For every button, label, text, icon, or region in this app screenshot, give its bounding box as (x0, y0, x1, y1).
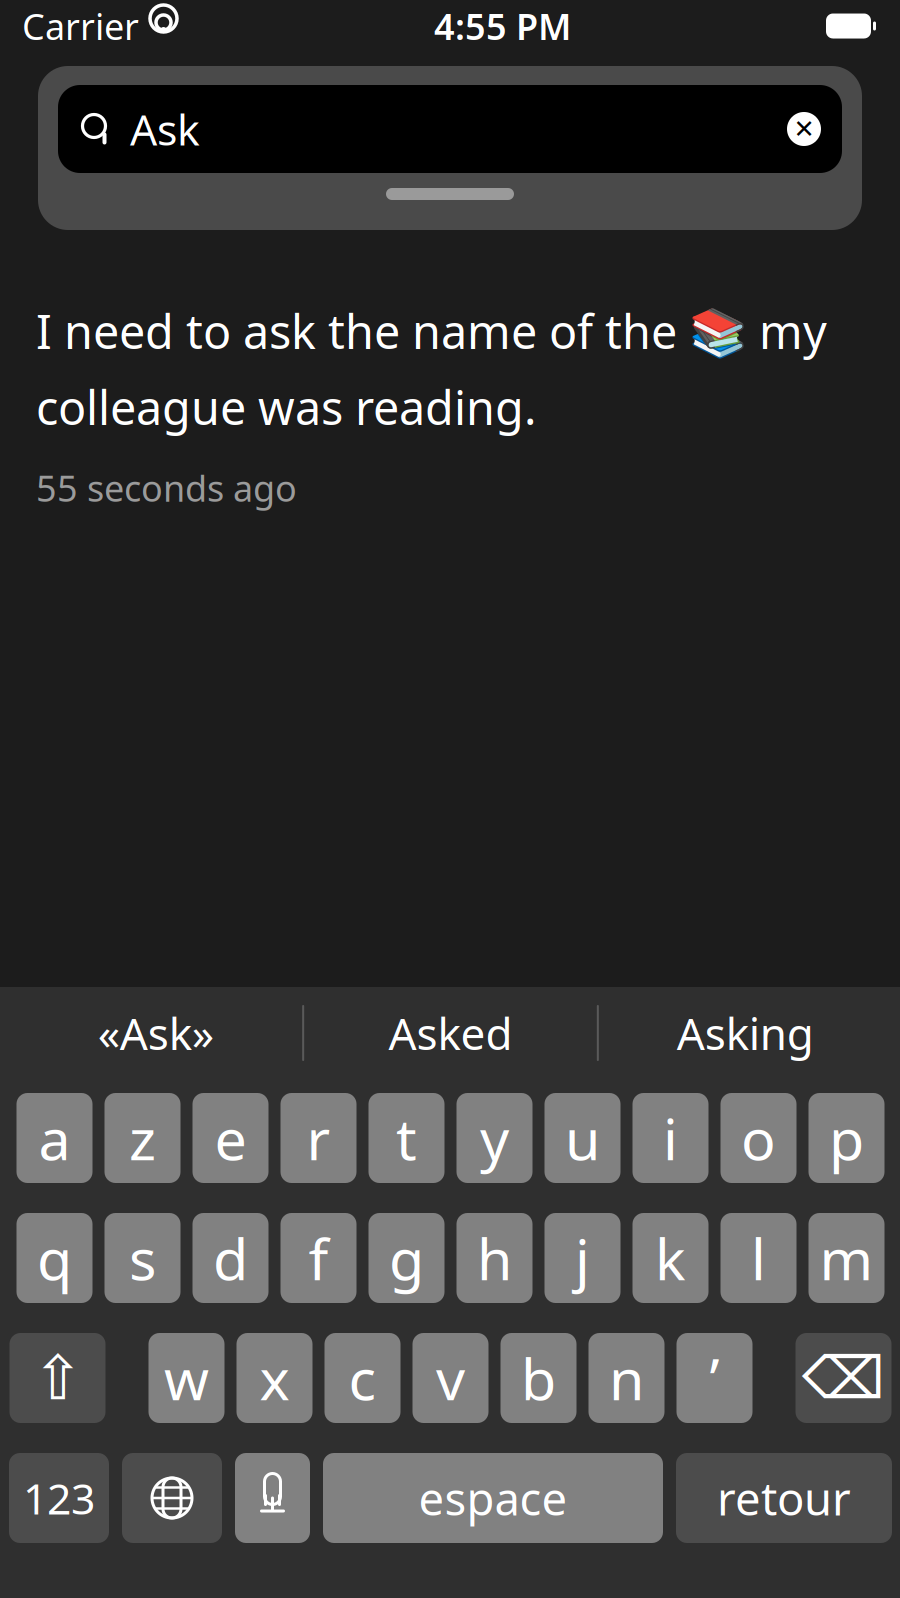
button[interactable]: i (632, 1093, 708, 1183)
staticText: Ask (130, 101, 200, 157)
button[interactable]: retour (676, 1453, 892, 1543)
button[interactable]: Delete (795, 1333, 891, 1423)
staticText: z (129, 1100, 156, 1176)
staticText: x (259, 1340, 289, 1416)
staticText: b (521, 1340, 556, 1416)
staticText: retour (717, 1468, 851, 1528)
button[interactable]: s (104, 1213, 180, 1303)
staticText: ⌫ (802, 1345, 885, 1411)
staticText: f (308, 1220, 328, 1296)
staticText: ✕ (793, 115, 814, 143)
button[interactable]: espace (323, 1453, 663, 1543)
button[interactable]: ’ (676, 1333, 752, 1423)
staticText: p (829, 1100, 864, 1176)
staticText: i (663, 1100, 678, 1176)
button[interactable]: r (280, 1093, 356, 1183)
button[interactable]: v (412, 1333, 488, 1423)
staticText: Carrier (22, 2, 139, 50)
button[interactable]: k (632, 1213, 708, 1303)
staticText: espace (418, 1468, 567, 1528)
staticText: m (819, 1220, 873, 1296)
staticText: 4:55 PM (434, 2, 571, 50)
button[interactable]: z (104, 1093, 180, 1183)
staticText: q (37, 1220, 72, 1296)
staticText: w (164, 1340, 209, 1416)
staticText: d (213, 1220, 248, 1296)
button[interactable]: p (808, 1093, 884, 1183)
staticText: k (655, 1220, 686, 1296)
button[interactable]: m (808, 1213, 884, 1303)
staticText: v (436, 1340, 465, 1416)
staticText: n (609, 1340, 644, 1416)
staticText: 55 seconds ago (36, 464, 297, 512)
staticText: «Ask» (98, 1004, 214, 1062)
button[interactable]: o (720, 1093, 796, 1183)
button[interactable]: Shift (9, 1333, 105, 1423)
button[interactable]: u (544, 1093, 620, 1183)
button[interactable]: q (16, 1213, 92, 1303)
button[interactable]: «Ask» (9, 987, 302, 1079)
button[interactable]: c (324, 1333, 400, 1423)
button[interactable]: y (456, 1093, 532, 1183)
staticText: e (214, 1100, 246, 1176)
button[interactable]: w (148, 1333, 224, 1423)
button[interactable]: Next keyboard (122, 1453, 222, 1543)
staticText: c (348, 1340, 376, 1416)
button[interactable]: f (280, 1213, 356, 1303)
staticText: r (306, 1100, 330, 1176)
staticText: a (38, 1100, 70, 1176)
button[interactable]: h (456, 1213, 532, 1303)
button[interactable]: Ask (58, 85, 842, 173)
staticText: t (396, 1100, 417, 1176)
staticText: I need to ask the name of the 📚 my colle… (36, 300, 827, 438)
button[interactable]: Asked (304, 987, 597, 1079)
button[interactable]: t (368, 1093, 444, 1183)
button[interactable]: 123 (9, 1453, 109, 1543)
staticText: g (389, 1220, 424, 1296)
staticText: y (480, 1100, 509, 1176)
button[interactable]: e (192, 1093, 268, 1183)
button[interactable]: d (192, 1213, 268, 1303)
staticText: o (741, 1100, 776, 1176)
button[interactable]: x (236, 1333, 312, 1423)
staticText: j (575, 1220, 590, 1296)
button[interactable]: g (368, 1213, 444, 1303)
button[interactable]: Dictate (235, 1453, 310, 1543)
staticText: 123 (23, 1470, 95, 1526)
button[interactable]: n (588, 1333, 664, 1423)
button[interactable]: a (16, 1093, 92, 1183)
staticText: u (565, 1100, 600, 1176)
staticText: s (129, 1220, 156, 1296)
button[interactable]: l (720, 1213, 796, 1303)
button[interactable]: j (544, 1213, 620, 1303)
staticText: ’ (709, 1340, 719, 1416)
staticText: Asked (388, 1004, 512, 1062)
staticText: Asking (677, 1004, 814, 1062)
staticText: l (751, 1220, 766, 1296)
staticText: h (477, 1220, 512, 1296)
button[interactable]: b (500, 1333, 576, 1423)
staticText: ⇧ (32, 1343, 83, 1413)
button[interactable]: Asking (599, 987, 891, 1079)
